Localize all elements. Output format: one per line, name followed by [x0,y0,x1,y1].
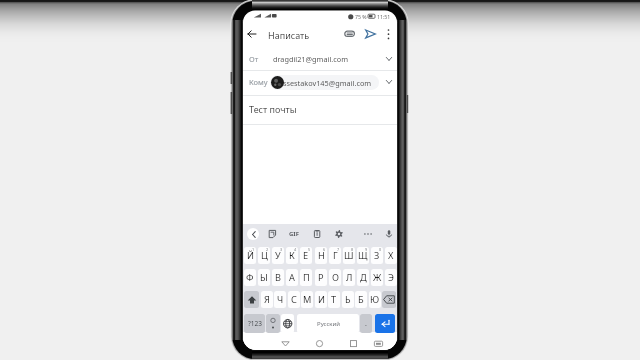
button[interactable]: Ц [258,247,270,264]
staticText: Г [333,249,338,262]
button[interactable]: Б [355,291,367,308]
button[interactable]: Ж [371,269,383,286]
button[interactable]: Ы [258,269,270,286]
button[interactable]: Comma [266,314,280,333]
button[interactable]: Р [315,269,327,286]
staticText: Щ [358,249,368,262]
staticText: Ю [370,293,380,306]
button[interactable]: Л [343,269,355,286]
button[interactable]: Expand [382,75,396,89]
staticText: Л [346,271,353,284]
staticText: 6 [323,247,326,252]
button[interactable]: Home [313,337,326,350]
button[interactable]: Back [279,337,292,350]
button[interactable]: К [286,247,298,264]
staticText: С [291,293,297,306]
button[interactable]: Attach file [341,26,358,42]
staticText: Й [247,249,254,262]
staticText: А [289,271,295,284]
button[interactable]: settings [333,228,345,240]
button[interactable]: Д [357,269,369,286]
staticText: К [289,249,295,262]
button[interactable]: Backspace [382,291,396,308]
staticText: 75 % [355,13,367,20]
staticText: GIF [289,230,299,238]
button[interactable]: Г [329,247,341,264]
button[interactable]: Н [315,247,327,264]
button[interactable]: Shift [244,291,259,308]
staticText: . [365,319,367,329]
staticText: Русский [317,320,340,328]
staticText: Ц [261,249,268,262]
button[interactable]: З [371,247,383,264]
staticText: И [318,293,325,306]
button[interactable]: Х [385,247,397,264]
staticText: 1 [252,247,255,252]
staticText: Э [388,271,394,284]
staticText: В [275,271,281,284]
button[interactable]: Э [385,269,397,286]
button[interactable]: Previous [247,228,259,240]
staticText: dragdil21@gmail.com [273,54,348,64]
staticText: О [332,271,339,284]
button[interactable]: Тест почты [243,95,397,123]
staticText: М [303,293,312,306]
button[interactable]: Back [245,26,261,42]
button[interactable]: Enter [375,314,395,333]
staticText: 5 [308,247,311,252]
button[interactable]: О [329,269,341,286]
staticText: 2 [266,247,269,252]
staticText: Ш [344,249,354,262]
button[interactable]: Ф [244,269,256,286]
button[interactable]: Ч [274,291,286,308]
staticText: 4 [294,247,297,252]
button[interactable]: М [301,291,313,308]
button[interactable]: Ш [343,247,355,264]
button[interactable]: sticker [266,228,278,240]
staticText: От [249,54,259,64]
button[interactable]: Русский [297,314,359,333]
button[interactable]: Ю [369,291,381,308]
button[interactable]: Т [328,291,340,308]
staticText: Ж [373,271,382,284]
staticText: Т [331,293,337,306]
button[interactable]: more [362,228,374,240]
button[interactable]: GIF [287,230,301,238]
staticText: Ф [246,271,254,284]
staticText: ssestakov145@gmail.com [283,78,372,88]
button[interactable]: С [288,291,300,308]
button[interactable]: П [300,269,312,286]
staticText: Х [388,249,394,262]
button[interactable]: More options [381,26,396,43]
button[interactable]: Я [261,291,273,308]
button[interactable]: Ь [342,291,354,308]
staticText: З [374,249,380,262]
button[interactable]: Recents [347,337,360,350]
staticText: 8 [351,247,354,252]
staticText: ?123 [248,319,262,328]
button[interactable]: А [286,269,298,286]
button[interactable]: От [243,48,397,70]
staticText: Ч [277,293,284,306]
button[interactable]: В [272,269,284,286]
staticText: Написать [268,29,310,41]
button[interactable]: Expand [382,52,396,66]
staticText: Кому [249,77,268,87]
button[interactable]: Period [360,314,372,333]
staticText: Н [318,249,325,262]
button[interactable]: И [315,291,327,308]
staticText: Б [358,293,364,306]
button[interactable]: voice [383,228,395,240]
staticText: Тест почты [249,103,297,115]
button[interactable]: Send [362,26,379,42]
button[interactable]: У [272,247,284,264]
button[interactable]: Change language [281,314,294,333]
staticText: 0 [379,247,382,252]
button[interactable]: ?123 [244,314,265,333]
button[interactable]: Hide keyboard [372,337,385,350]
button[interactable]: Е [300,247,312,264]
button[interactable]: clipboard [311,228,323,240]
button[interactable]: Щ [357,247,369,264]
button[interactable]: Й [244,247,256,264]
button[interactable]: Кому [243,70,397,94]
